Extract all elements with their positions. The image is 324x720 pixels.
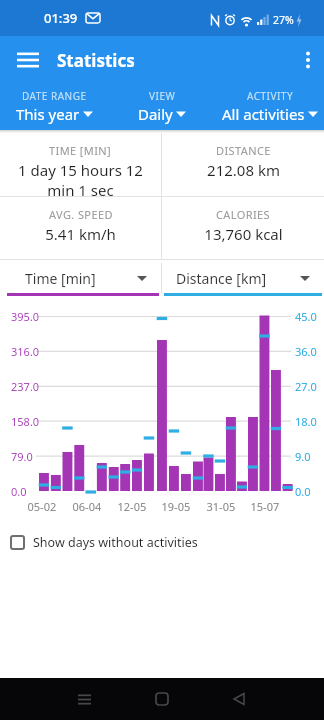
staticText: ACTIVITY xyxy=(247,89,294,103)
staticText: 1 day 15 hours 12 min 1 sec xyxy=(18,160,143,196)
staticText: 212.08 km xyxy=(207,160,280,180)
staticText: This year xyxy=(16,104,80,124)
staticText: DATE RANGE xyxy=(22,89,87,103)
staticText: Time [min] xyxy=(25,269,96,288)
staticText: DISTANCE xyxy=(216,143,271,158)
staticText: All activities xyxy=(222,104,305,124)
staticText: Statistics xyxy=(57,49,135,72)
staticText: VIEW xyxy=(149,89,176,103)
staticText: 5.41 km/h xyxy=(45,224,116,244)
staticText: TIME [MIN] xyxy=(49,143,112,158)
staticText: 27% xyxy=(273,13,294,27)
staticText: Daily xyxy=(138,104,173,124)
staticText: Distance [km] xyxy=(176,269,267,288)
staticText: Show days without activities xyxy=(33,534,198,551)
staticText: 13,760 kcal xyxy=(204,224,283,244)
staticText: AVG. SPEED xyxy=(49,207,113,222)
staticText: CALORIES xyxy=(216,207,271,222)
staticText: 01:39 xyxy=(44,9,78,27)
